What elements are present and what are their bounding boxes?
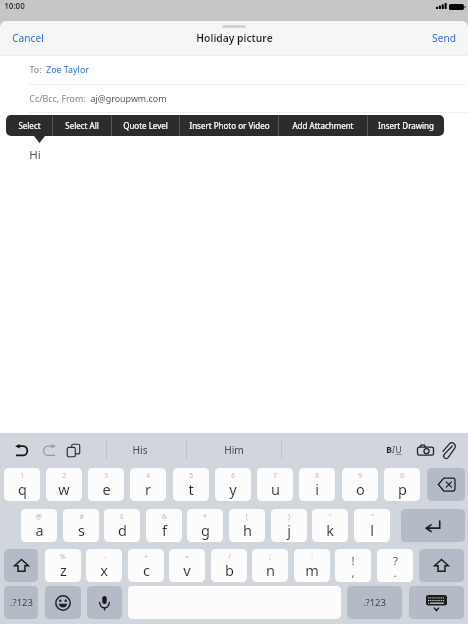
staticText: 1 bbox=[20, 471, 24, 480]
button[interactable]: ? bbox=[377, 549, 413, 582]
button[interactable]: 8 bbox=[299, 468, 335, 501]
button[interactable]: Cc/Bcc, From: bbox=[0, 85, 468, 112]
button[interactable]: 6 bbox=[215, 468, 251, 501]
staticText: c bbox=[143, 560, 150, 580]
staticText: , bbox=[351, 565, 355, 581]
staticText: " bbox=[371, 512, 374, 521]
staticText: 10:00 bbox=[4, 0, 25, 11]
button[interactable]: ' bbox=[312, 509, 348, 542]
button[interactable]: 5 bbox=[173, 468, 209, 501]
button[interactable]: Camera bbox=[413, 438, 437, 462]
staticText: d bbox=[118, 520, 127, 540]
staticText: 9 bbox=[358, 471, 362, 480]
staticText: q bbox=[18, 479, 27, 499]
staticText: = bbox=[185, 552, 189, 561]
button[interactable]: 1 bbox=[4, 468, 40, 501]
button[interactable]: Undo bbox=[10, 438, 34, 462]
staticText: To: bbox=[29, 63, 42, 75]
staticText: 3 bbox=[104, 471, 108, 480]
staticText: t bbox=[188, 479, 194, 499]
button[interactable]: & bbox=[146, 509, 182, 542]
button[interactable]: Hide keyboard bbox=[409, 586, 464, 619]
button[interactable]: Insert Drawing bbox=[368, 115, 444, 136]
button[interactable]: : bbox=[294, 549, 330, 582]
button[interactable]: Select All bbox=[53, 115, 111, 136]
button[interactable]: .?123 bbox=[347, 586, 402, 619]
button[interactable]: 2 bbox=[46, 468, 82, 501]
button[interactable]: Cancel bbox=[0, 26, 56, 50]
staticText: : bbox=[311, 552, 313, 561]
button[interactable]: Dictate bbox=[87, 586, 122, 619]
button[interactable]: Him bbox=[187, 436, 281, 464]
button[interactable]: / bbox=[211, 549, 247, 582]
button[interactable]: # bbox=[63, 509, 99, 542]
button[interactable]: 7 bbox=[257, 468, 293, 501]
button[interactable]: Attach bbox=[436, 438, 460, 462]
button[interactable]: Add Attachment bbox=[279, 115, 367, 136]
staticText: / bbox=[228, 552, 231, 561]
staticText: .?123 bbox=[363, 596, 386, 609]
button[interactable]: + bbox=[128, 549, 164, 582]
staticText: # bbox=[79, 512, 84, 521]
button[interactable]: % bbox=[45, 549, 81, 582]
button[interactable]: Return bbox=[401, 509, 465, 542]
button[interactable]: Paste bbox=[61, 438, 85, 462]
staticText: Holiday picture bbox=[196, 31, 273, 45]
staticText: .?123 bbox=[10, 596, 33, 609]
staticText: Send bbox=[432, 31, 456, 45]
staticText: Insert Drawing bbox=[378, 120, 434, 131]
button[interactable]: * bbox=[187, 509, 223, 542]
button[interactable]: Send bbox=[420, 26, 468, 50]
staticText: g bbox=[201, 520, 210, 540]
button[interactable]: To: bbox=[0, 56, 468, 84]
staticText: r bbox=[145, 479, 151, 499]
staticText: h bbox=[243, 520, 252, 540]
button[interactable]: Format bbox=[382, 438, 406, 462]
staticText: @ bbox=[36, 512, 42, 521]
staticText: - bbox=[103, 552, 106, 561]
button[interactable]: His bbox=[107, 436, 172, 464]
staticText: Add Attachment bbox=[292, 120, 354, 131]
button[interactable]: Quote Level bbox=[112, 115, 179, 136]
staticText: ? bbox=[393, 553, 398, 569]
button[interactable]: @ bbox=[21, 509, 57, 542]
button[interactable]: 0 bbox=[384, 468, 420, 501]
staticText: Quote Level bbox=[123, 120, 168, 131]
staticText: ( bbox=[246, 512, 248, 521]
button[interactable]: 3 bbox=[88, 468, 124, 501]
button[interactable]: Shift bbox=[419, 549, 464, 582]
staticText: i bbox=[315, 479, 319, 499]
button[interactable]: Shift bbox=[4, 549, 38, 582]
staticText: Cc/Bcc, From: bbox=[29, 92, 86, 104]
button[interactable]: " bbox=[354, 509, 390, 542]
staticText: His bbox=[132, 443, 148, 457]
staticText: Hi bbox=[29, 147, 41, 163]
button[interactable]: Emoji bbox=[45, 586, 81, 619]
staticText: Select All bbox=[65, 120, 99, 131]
button[interactable]: Select bbox=[6, 115, 52, 136]
button[interactable]: Redo bbox=[37, 438, 61, 462]
staticText: . bbox=[393, 565, 397, 581]
button[interactable]: 9 bbox=[342, 468, 378, 501]
staticText: Zoe Taylor bbox=[46, 63, 89, 75]
staticText: aj@groupwm.com bbox=[90, 92, 167, 104]
button[interactable]: ( bbox=[229, 509, 265, 542]
button[interactable]: - bbox=[86, 549, 122, 582]
button[interactable]: ! bbox=[335, 549, 371, 582]
button[interactable]: ) bbox=[271, 509, 307, 542]
staticText: n bbox=[266, 560, 275, 580]
button[interactable]: .?123 bbox=[4, 586, 38, 619]
staticText: 8 bbox=[315, 471, 319, 480]
button[interactable]: £ bbox=[104, 509, 140, 542]
button[interactable]: = bbox=[169, 549, 205, 582]
button[interactable]: ; bbox=[252, 549, 288, 582]
button[interactable]: 4 bbox=[130, 468, 166, 501]
staticText: ) bbox=[288, 512, 290, 521]
button[interactable]: Backspace bbox=[427, 468, 465, 501]
staticText: Insert Photo or Video bbox=[189, 120, 270, 131]
staticText: y bbox=[229, 479, 237, 499]
staticText: 2 bbox=[62, 471, 66, 480]
button[interactable]: Insert Photo or Video bbox=[180, 115, 278, 136]
staticText: f bbox=[162, 520, 167, 540]
